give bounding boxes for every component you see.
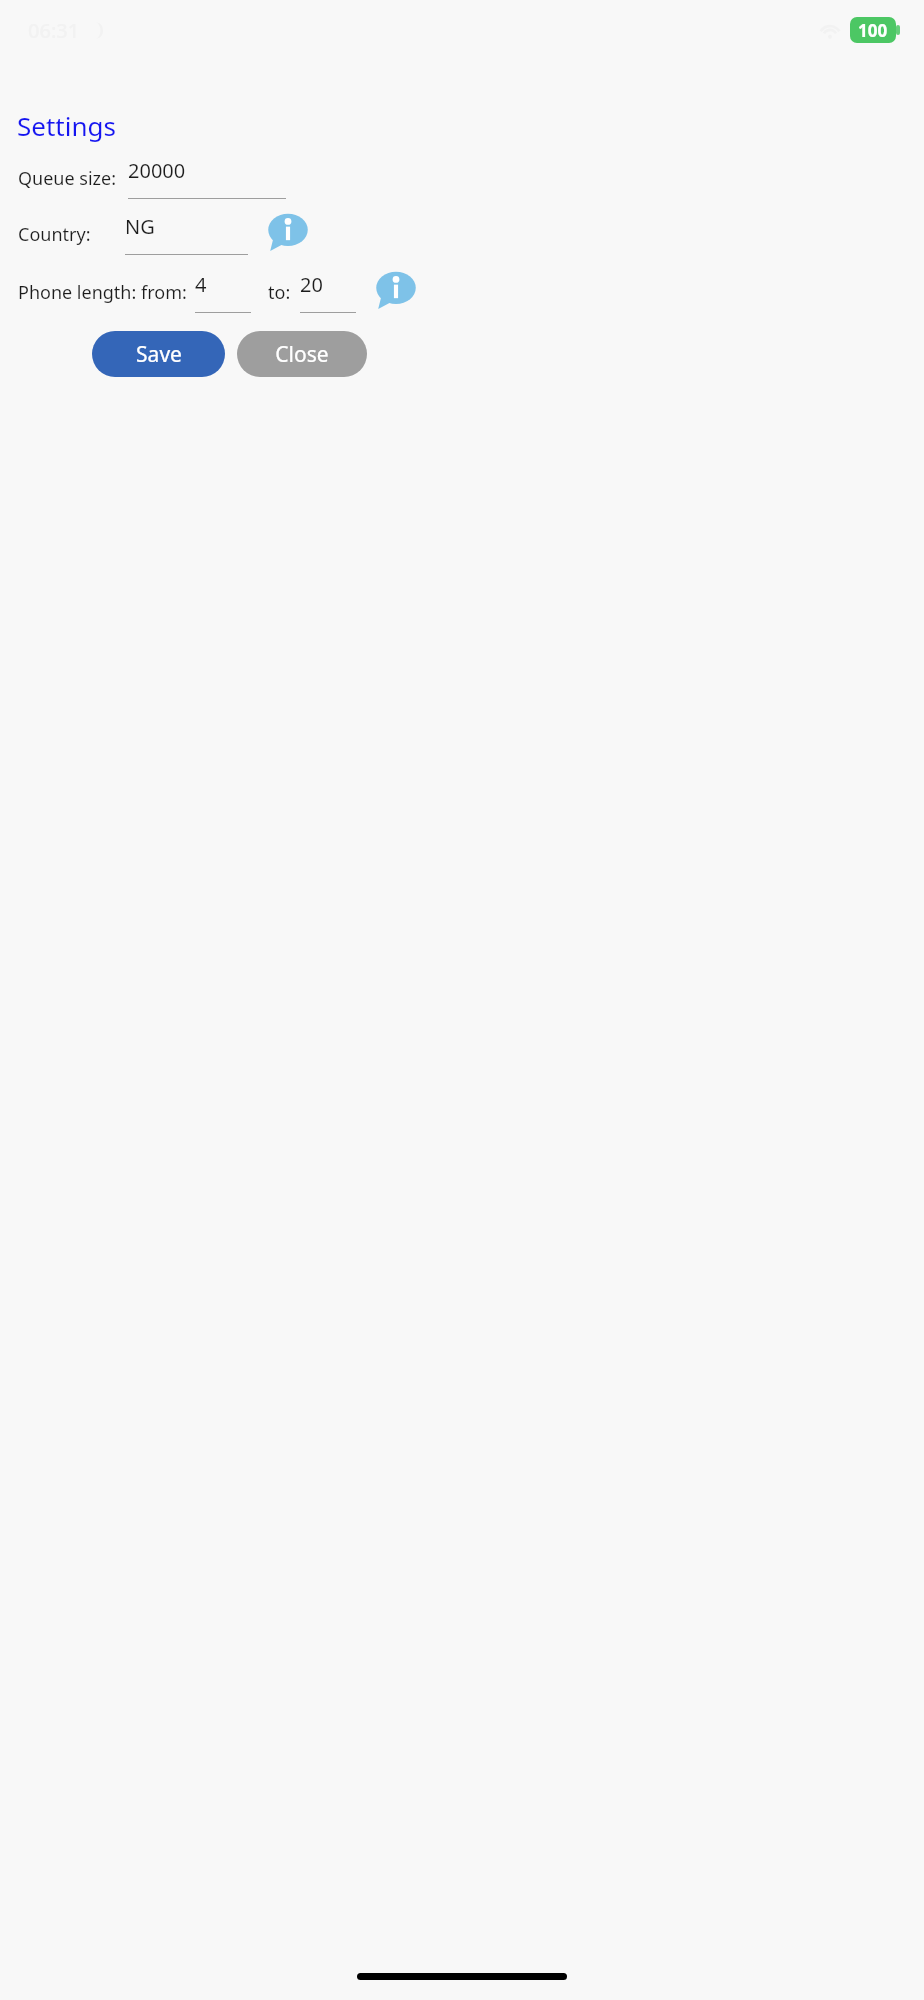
- button[interactable]: Save: [92, 331, 225, 377]
- staticText: Queue size:: [18, 166, 116, 191]
- staticText: Phone length: from:: [18, 280, 187, 305]
- staticText: to:: [268, 280, 291, 305]
- staticText: 20: [300, 271, 323, 298]
- button[interactable]: Country info: [265, 211, 311, 257]
- button[interactable]: Close: [237, 331, 367, 377]
- staticText: NG: [125, 213, 155, 240]
- staticText: 4: [195, 271, 207, 298]
- button[interactable]: Phone length info: [373, 269, 419, 315]
- staticText: Country:: [18, 222, 91, 247]
- staticText: Settings: [17, 108, 116, 143]
- staticText: 100: [858, 19, 888, 42]
- staticText: Save: [136, 340, 182, 369]
- staticText: 20000: [128, 157, 186, 184]
- staticText: Close: [275, 340, 329, 369]
